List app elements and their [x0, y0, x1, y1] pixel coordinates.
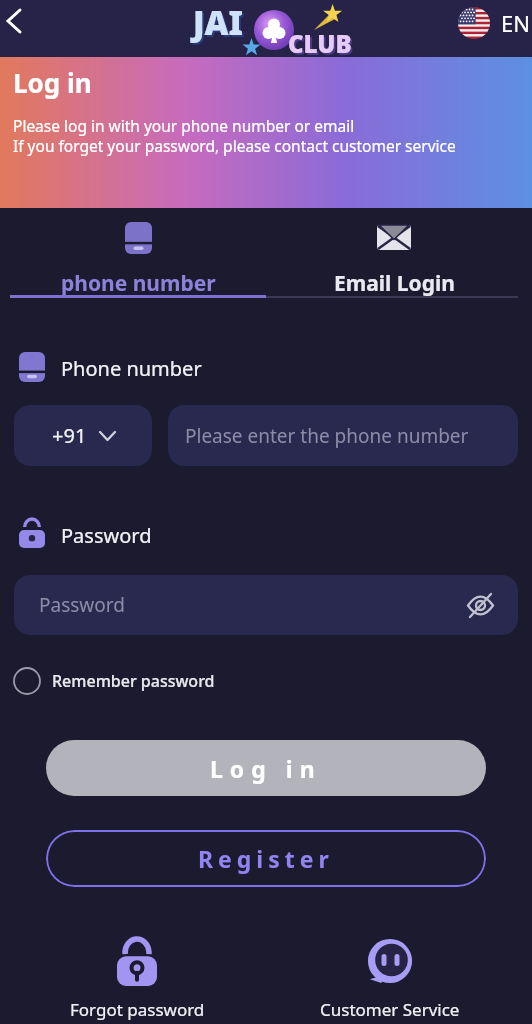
button[interactable]: Forgot password: [62, 930, 212, 1024]
staticText: EN: [501, 8, 530, 38]
staticText: Please log in with your phone number or …: [13, 115, 355, 136]
staticText: +91: [52, 422, 87, 449]
staticText: Forgot password: [70, 998, 205, 1021]
staticText: Email Login: [334, 269, 455, 296]
button[interactable]: Email Login: [266, 212, 522, 296]
button[interactable]: Register: [46, 830, 486, 887]
button[interactable]: Log in: [46, 740, 486, 796]
button[interactable]: [0, 0, 36, 46]
staticText: If you forget your password, please cont…: [13, 135, 456, 156]
staticText: JAI: [195, 2, 246, 47]
staticText: Register: [198, 843, 334, 874]
staticText: Log in: [13, 65, 92, 100]
staticText: phone number: [61, 269, 216, 296]
staticText: JAI: [193, 0, 244, 45]
staticText: Password: [61, 522, 152, 549]
staticText: CLUB: [288, 27, 352, 60]
staticText: CLUB: [290, 29, 354, 62]
staticText: Customer Service: [320, 998, 460, 1021]
staticText: Phone number: [61, 355, 202, 382]
button[interactable]: Password: [14, 575, 518, 635]
staticText: Password: [39, 592, 125, 618]
button[interactable]: EN: [458, 0, 530, 46]
button[interactable]: Remember password: [13, 667, 215, 695]
button[interactable]: Customer Service: [315, 930, 465, 1024]
staticText: Please enter the phone number: [185, 423, 469, 449]
button[interactable]: phone number: [10, 212, 266, 296]
staticText: Log in: [210, 753, 322, 784]
button[interactable]: Please enter the phone number: [168, 405, 518, 466]
button[interactable]: +91: [14, 405, 152, 466]
staticText: Remember password: [52, 670, 215, 692]
